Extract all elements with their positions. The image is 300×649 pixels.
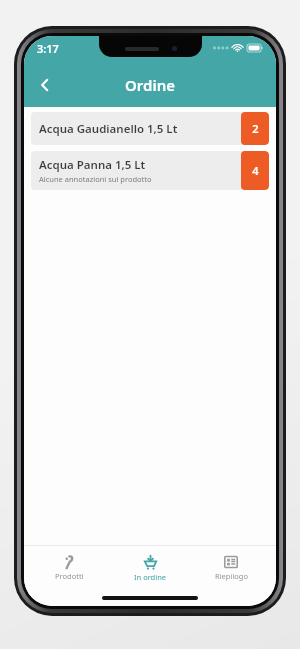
- button[interactable]: Riepilogo: [195, 546, 267, 590]
- staticText: Acqua Gaudianello 1,5 Lt: [39, 121, 178, 137]
- staticText: Ordine: [125, 75, 175, 95]
- staticText: 4: [252, 163, 259, 178]
- staticText: Acqua Panna 1,5 Lt: [39, 157, 146, 173]
- staticText: In ordine: [134, 572, 167, 582]
- staticText: Prodotti: [55, 571, 84, 581]
- staticText: Riepilogo: [215, 571, 248, 581]
- button[interactable]: Acqua Panna 1,5 Lt: [31, 151, 269, 190]
- button[interactable]: Prodotti: [33, 546, 105, 590]
- button[interactable]: Acqua Gaudianello 1,5 Lt: [31, 112, 269, 145]
- staticText: 2: [252, 121, 259, 136]
- staticText: Alcune annotazioni sul prodotto: [39, 174, 152, 184]
- staticText: 3:17: [37, 41, 59, 56]
- button[interactable]: Back: [24, 64, 66, 106]
- button[interactable]: In ordine: [114, 546, 186, 590]
